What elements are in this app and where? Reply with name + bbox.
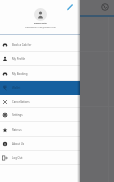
button[interactable]: My Booking bbox=[0, 66, 80, 81]
button[interactable]: My Profile bbox=[0, 52, 80, 66]
staticText: My Profile bbox=[12, 57, 26, 61]
staticText: Dipak patil bbox=[34, 21, 47, 24]
button[interactable]: Log Out bbox=[0, 151, 80, 165]
button[interactable]: Rate us bbox=[0, 123, 80, 137]
button[interactable]: Call bbox=[101, 3, 109, 11]
staticText: Book a Cab for bbox=[12, 43, 32, 47]
staticText: Log Out bbox=[12, 156, 23, 160]
staticText: Settings bbox=[12, 113, 23, 117]
button[interactable]: About Us bbox=[0, 137, 80, 151]
staticText: About Us bbox=[12, 142, 25, 146]
button[interactable]: Cancellations bbox=[0, 95, 80, 108]
staticText: patildipak13199@gmail.com bbox=[25, 26, 56, 29]
button[interactable]: Edit profile bbox=[66, 2, 75, 11]
staticText: Cancellations bbox=[12, 100, 30, 104]
button[interactable]: Wallet bbox=[0, 81, 80, 95]
button[interactable]: Book a Cab for bbox=[0, 38, 80, 52]
staticText: Wallet bbox=[12, 86, 21, 90]
button[interactable]: Settings bbox=[0, 108, 80, 122]
staticText: My Booking bbox=[12, 72, 28, 76]
staticText: Rate us bbox=[12, 128, 22, 132]
